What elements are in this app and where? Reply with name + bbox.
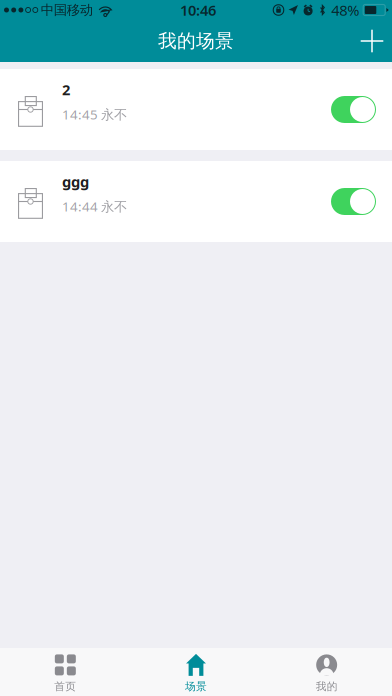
button[interactable]: Add scene [348,19,392,63]
staticText: 10:46 [180,0,216,20]
button[interactable]: 我的 [261,648,392,696]
staticText: ggg [62,172,89,191]
button[interactable]: 首页 [0,648,131,696]
staticText: 场景 [185,680,207,693]
button[interactable]: ggg [0,161,392,242]
staticText: 中国移动 [41,2,93,18]
staticText: 我的 [316,680,338,693]
staticText: 2 [62,80,70,99]
staticText: 首页 [54,680,76,693]
staticText: 14:45 永不 [62,105,127,123]
button[interactable]: 场景 [131,648,261,696]
staticText: 14:44 永不 [62,197,127,215]
staticText: 48% [331,0,359,20]
button[interactable]: 2 [0,69,392,150]
staticText: 我的场景 [158,29,234,52]
